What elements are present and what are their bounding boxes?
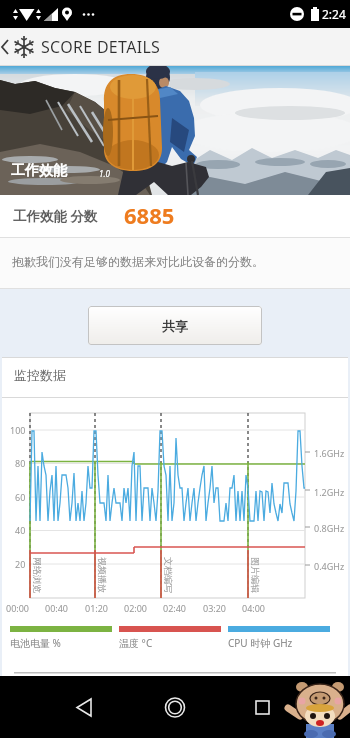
staticText: 01:20 <box>85 602 109 614</box>
staticText: 1.0 <box>99 168 110 179</box>
staticText: 00:40 <box>45 602 69 614</box>
staticText: 6885 <box>124 200 175 230</box>
staticText: 工作效能 分数 <box>13 207 98 225</box>
staticText: 1.2GHz <box>314 486 345 498</box>
staticText: CPU 时钟 GHz <box>228 636 293 650</box>
staticText: 04:00 <box>242 602 266 614</box>
staticText: 80 <box>15 457 26 469</box>
staticText: 文档编写 <box>163 557 174 593</box>
staticText: 20 <box>15 558 26 570</box>
button[interactable] <box>145 678 205 736</box>
staticText: 2:24 <box>322 6 346 22</box>
staticText: 监控数据 <box>14 367 66 383</box>
button[interactable] <box>232 678 292 736</box>
staticText: 00:00 <box>6 602 30 614</box>
staticText: 0.4GHz <box>314 560 345 572</box>
staticText: 02:00 <box>124 602 148 614</box>
staticText: 网络浏览 <box>32 557 43 593</box>
button[interactable] <box>58 678 118 736</box>
staticText: 02:40 <box>163 602 187 614</box>
staticText: 03:20 <box>203 602 227 614</box>
staticText: 视频播放 <box>97 557 108 593</box>
staticText: 40 <box>15 524 26 536</box>
staticText: SCORE DETAILS <box>41 36 161 58</box>
staticText: 电池电量 % <box>10 636 61 650</box>
button[interactable] <box>0 28 40 66</box>
staticText: 图片编辑 <box>250 557 261 593</box>
staticText: 60 <box>15 491 26 503</box>
staticText: 0.8GHz <box>314 522 345 534</box>
staticText: 工作效能 <box>11 162 67 180</box>
button[interactable]: 共享 <box>88 306 262 345</box>
staticText: 温度 °C <box>119 636 153 650</box>
staticText: 共享 <box>162 318 188 334</box>
staticText: 100 <box>10 424 26 436</box>
staticText: 1.6GHz <box>314 447 345 459</box>
staticText: 抱歉我们没有足够的数据来对比此设备的分数。 <box>12 254 264 269</box>
